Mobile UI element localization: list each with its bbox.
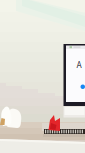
staticText: A <box>76 59 81 70</box>
